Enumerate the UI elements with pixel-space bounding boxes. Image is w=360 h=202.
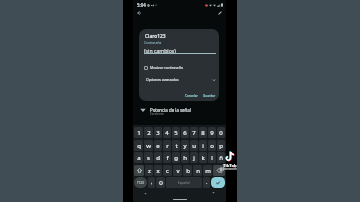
- button[interactable]: u: [190, 140, 198, 151]
- button[interactable]: r: [163, 140, 171, 151]
- staticText: 0: [219, 129, 223, 137]
- button[interactable]: Opciones avanzadas: [139, 75, 219, 84]
- button[interactable]: c: [163, 165, 172, 176]
- staticText: .: [206, 178, 208, 185]
- staticText: l: [211, 154, 213, 162]
- button[interactable]: 0: [217, 127, 225, 138]
- button[interactable]: v: [173, 165, 182, 176]
- button[interactable]: f: [163, 152, 171, 163]
- button[interactable]: Enter: [211, 177, 225, 188]
- staticText: 5: [174, 129, 178, 137]
- staticText: n: [196, 167, 200, 175]
- button[interactable]: Recents: [210, 189, 216, 195]
- button[interactable]: 5: [172, 127, 180, 138]
- staticText: Guardar: [203, 94, 216, 98]
- staticText: c: [166, 167, 169, 175]
- staticText: Potencia de la señal: [150, 107, 191, 113]
- button[interactable]: m: [203, 165, 212, 176]
- button[interactable]: 8: [199, 127, 207, 138]
- staticText: 5:04: [137, 2, 146, 8]
- button[interactable]: 2: [144, 127, 153, 138]
- button[interactable]: y: [181, 140, 189, 151]
- button[interactable]: 3: [154, 127, 162, 138]
- staticText: h: [183, 154, 187, 162]
- staticText: Contraseña: [144, 41, 162, 45]
- button[interactable]: Hide keyboard: [142, 190, 148, 196]
- button[interactable]: s: [144, 152, 153, 163]
- button[interactable]: g: [172, 152, 180, 163]
- staticText: r: [166, 142, 169, 150]
- staticText: f: [166, 154, 169, 162]
- button[interactable]: d: [154, 152, 162, 163]
- staticText: 3: [156, 129, 160, 137]
- button[interactable]: Guardar: [201, 92, 218, 100]
- button[interactable]: Back: [134, 8, 144, 18]
- button[interactable]: Edit: [215, 8, 225, 18]
- staticText: Mostrar contraseña: [150, 65, 184, 70]
- button[interactable]: .: [203, 177, 210, 188]
- staticText: z: [148, 167, 151, 175]
- button[interactable]: 7: [190, 127, 198, 138]
- staticText: 9: [210, 129, 214, 137]
- button[interactable]: ?123: [134, 177, 147, 188]
- button[interactable]: Español: [166, 177, 202, 188]
- button[interactable]: p: [217, 140, 225, 151]
- staticText: Claro123: [145, 33, 166, 40]
- button[interactable]: l: [208, 152, 216, 163]
- button[interactable]: Shift: [134, 165, 144, 176]
- button[interactable]: 6: [181, 127, 189, 138]
- staticText: u: [192, 142, 196, 150]
- button[interactable]: h: [181, 152, 189, 163]
- staticText: o: [210, 142, 214, 150]
- button[interactable]: a: [134, 152, 143, 163]
- button[interactable]: b: [183, 165, 192, 176]
- staticText: b: [186, 167, 190, 175]
- staticText: s: [147, 154, 150, 162]
- button[interactable]: x: [154, 165, 162, 176]
- staticText: ?123: [137, 181, 144, 185]
- button[interactable]: Emoji: [156, 177, 165, 188]
- button[interactable]: k: [199, 152, 207, 163]
- staticText: i: [202, 142, 204, 150]
- staticText: ñ: [219, 154, 223, 162]
- button[interactable]: j: [190, 152, 198, 163]
- button[interactable]: Backspace: [213, 165, 225, 176]
- button[interactable]: Mostrar contraseña: [139, 63, 219, 72]
- button[interactable]: [133, 103, 226, 118]
- staticText: w: [146, 142, 151, 150]
- button[interactable]: ,: [148, 177, 155, 188]
- button[interactable]: e: [154, 140, 162, 151]
- staticText: x: [156, 167, 160, 175]
- staticText: @jhonsmith: [220, 167, 237, 171]
- staticText: Español: [178, 181, 190, 185]
- staticText: 7: [192, 129, 196, 137]
- staticText: 8: [201, 129, 205, 137]
- staticText: k: [201, 154, 205, 162]
- staticText: (sin cambios): [144, 47, 176, 54]
- staticText: 6: [183, 129, 187, 137]
- button[interactable]: i: [199, 140, 207, 151]
- button[interactable]: n: [193, 165, 202, 176]
- button[interactable]: q: [134, 140, 143, 151]
- button[interactable]: t: [172, 140, 180, 151]
- button[interactable]: Cancelar: [183, 92, 200, 100]
- staticText: Opciones avanzadas: [146, 77, 179, 82]
- staticText: j: [193, 154, 195, 162]
- button[interactable]: 4: [163, 127, 171, 138]
- staticText: g: [174, 154, 178, 162]
- staticText: e: [156, 142, 160, 150]
- button[interactable]: 1: [134, 127, 143, 138]
- staticText: p: [219, 142, 223, 150]
- staticText: 1: [137, 129, 141, 137]
- staticText: q: [137, 142, 141, 150]
- button[interactable]: o: [208, 140, 216, 151]
- staticText: a: [137, 154, 141, 162]
- staticText: y: [183, 142, 187, 150]
- button[interactable]: w: [144, 140, 153, 151]
- button[interactable]: ñ: [217, 152, 225, 163]
- button[interactable]: 9: [208, 127, 216, 138]
- staticText: ,: [151, 178, 153, 185]
- button[interactable]: z: [145, 165, 153, 176]
- staticText: m: [205, 167, 211, 175]
- staticText: Cancelar: [185, 94, 198, 98]
